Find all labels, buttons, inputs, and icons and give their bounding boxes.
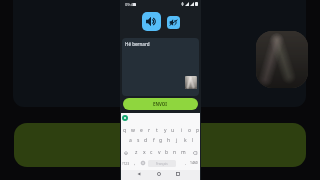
button[interactable]: e xyxy=(137,125,145,136)
button[interactable]: Shift xyxy=(121,147,130,158)
button[interactable]: ENVOI xyxy=(123,98,198,110)
button[interactable]: r xyxy=(145,125,153,136)
button[interactable]: x xyxy=(140,147,148,158)
staticText: u xyxy=(171,127,175,134)
button[interactable]: f xyxy=(150,135,158,146)
staticText: p xyxy=(196,127,200,134)
button[interactable]: n xyxy=(171,147,179,158)
button[interactable]: Enter xyxy=(189,157,199,168)
button[interactable]: i xyxy=(178,125,186,136)
staticText: g xyxy=(159,137,163,144)
button[interactable]: k xyxy=(181,135,189,146)
staticText: a xyxy=(129,137,132,144)
staticText: c xyxy=(150,149,153,156)
staticText: Français xyxy=(156,162,168,166)
staticText: r xyxy=(148,127,151,134)
button[interactable]: Backspace xyxy=(190,147,199,158)
staticText: f xyxy=(153,137,155,144)
staticText: ENVOI xyxy=(153,101,168,107)
button[interactable]: Space xyxy=(148,160,176,167)
button[interactable]: d xyxy=(142,135,150,146)
staticText: e xyxy=(140,127,143,134)
staticText: d xyxy=(144,137,148,144)
button[interactable]: q xyxy=(121,125,129,136)
button[interactable]: Volume up xyxy=(142,12,161,31)
staticText: z xyxy=(135,149,138,156)
staticText: w xyxy=(131,127,135,134)
button[interactable]: Period xyxy=(182,157,189,168)
button[interactable]: ?123 xyxy=(121,157,131,168)
staticText: b xyxy=(165,149,169,156)
button[interactable]: c xyxy=(147,147,155,158)
button[interactable]: y xyxy=(161,125,169,136)
button[interactable]: Home xyxy=(155,170,163,178)
staticText: j xyxy=(176,137,178,144)
button[interactable]: m xyxy=(179,147,187,158)
staticText: q xyxy=(123,127,127,134)
button[interactable]: Comma xyxy=(131,157,138,168)
staticText: x xyxy=(143,149,146,156)
button[interactable]: g xyxy=(157,135,165,146)
staticText: . xyxy=(185,160,187,166)
staticText: Hé bernard xyxy=(125,41,150,47)
button[interactable]: j xyxy=(173,135,181,146)
staticText: y xyxy=(164,127,167,134)
button[interactable]: u xyxy=(169,125,177,136)
staticText: h xyxy=(167,137,171,144)
button[interactable]: Mute xyxy=(167,16,180,29)
button[interactable]: o xyxy=(186,125,194,136)
staticText: i xyxy=(181,127,183,134)
button[interactable]: a xyxy=(126,135,134,146)
button[interactable]: v xyxy=(155,147,163,158)
staticText: v xyxy=(158,149,161,156)
button[interactable]: p xyxy=(194,125,202,136)
staticText: t xyxy=(156,127,158,134)
button[interactable]: z xyxy=(132,147,140,158)
staticText: , xyxy=(134,160,136,166)
button[interactable]: h xyxy=(165,135,173,146)
button[interactable]: Google xyxy=(122,115,128,121)
button[interactable]: b xyxy=(163,147,171,158)
button[interactable]: Back xyxy=(135,170,143,178)
staticText: k xyxy=(184,137,187,144)
staticText: m xyxy=(181,149,186,156)
staticText: ?123 xyxy=(122,161,130,165)
staticText: s xyxy=(137,137,140,144)
button[interactable]: t xyxy=(153,125,161,136)
staticText: n xyxy=(173,149,177,156)
button[interactable]: Voice input xyxy=(139,157,147,168)
staticText: l xyxy=(192,137,194,144)
button[interactable]: l xyxy=(189,135,197,146)
button[interactable]: Recent apps xyxy=(174,170,182,178)
button[interactable]: w xyxy=(129,125,137,136)
staticText: o xyxy=(188,127,192,134)
staticText: 1460 xyxy=(190,160,198,165)
staticText: 09:46 xyxy=(125,2,136,7)
button[interactable]: s xyxy=(134,135,142,146)
